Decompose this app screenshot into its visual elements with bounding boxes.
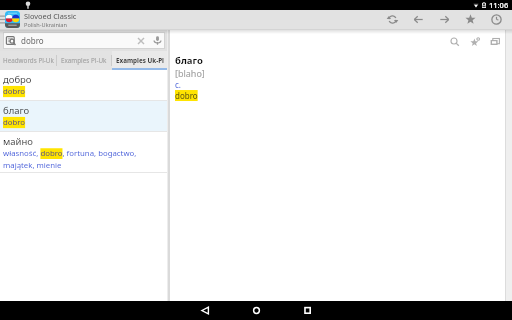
button[interactable]: Clear query — [135, 32, 147, 49]
staticText: dobro — [3, 117, 26, 128]
button[interactable]: Headwords Pl-Uk — [0, 51, 56, 70]
staticText: майно — [3, 135, 33, 148]
staticText: dobro — [175, 90, 198, 101]
button[interactable]: Open navigation drawer — [0, 10, 5, 29]
button[interactable]: Examples Pl-Uk — [57, 51, 111, 70]
button[interactable]: Recent apps — [282, 301, 333, 320]
button[interactable]: Search in article — [445, 30, 465, 54]
staticText: dobro — [3, 86, 26, 97]
staticText: 11:06 — [489, 0, 509, 10]
staticText: [blaho] — [175, 67, 205, 79]
staticText: własność, dobro, fortuna, bogactwo, mają… — [3, 148, 164, 170]
button[interactable]: благо — [0, 101, 167, 131]
button[interactable]: Back — [405, 10, 431, 29]
button[interactable]: Favorites — [457, 10, 483, 29]
button[interactable]: майно — [0, 132, 167, 172]
button[interactable]: dobro — [3, 32, 165, 49]
staticText: Examples Uk-Pl — [116, 56, 164, 65]
staticText: Polish-Ukrainian — [24, 21, 67, 29]
staticText: c. — [175, 79, 181, 90]
staticText: dobro — [21, 35, 44, 46]
button[interactable]: Add to favorites — [465, 30, 485, 54]
button[interactable]: Examples Uk-Pl — [112, 51, 167, 70]
button[interactable]: Flashcards — [485, 30, 505, 54]
button[interactable]: добро — [0, 70, 167, 100]
staticText: благо — [175, 54, 203, 67]
button[interactable]: Home — [231, 301, 282, 320]
staticText: Headwords Pl-Uk — [3, 56, 54, 65]
button[interactable]: Refresh — [379, 10, 405, 29]
staticText: Examples Pl-Uk — [61, 56, 107, 65]
staticText: благо — [3, 104, 30, 117]
button[interactable]: History — [483, 10, 509, 29]
button[interactable]: Back — [180, 301, 231, 320]
staticText: добро — [3, 73, 32, 86]
button[interactable]: Voice search — [151, 32, 163, 49]
button[interactable]: Forward — [431, 10, 457, 29]
staticText: Slovoed Classic — [24, 11, 77, 21]
